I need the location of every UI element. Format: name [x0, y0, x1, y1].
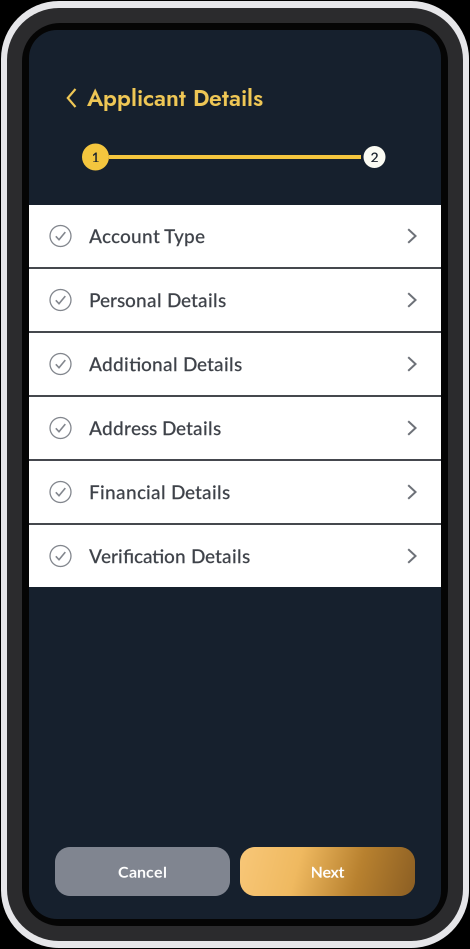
staticText: Personal Details: [89, 289, 226, 311]
button[interactable]: Back: [57, 82, 87, 114]
button[interactable]: Personal Details: [29, 269, 441, 331]
button[interactable]: Verification Details: [29, 525, 441, 587]
button[interactable]: Account Type: [29, 205, 441, 267]
button[interactable]: Financial Details: [29, 461, 441, 523]
button[interactable]: Additional Details: [29, 333, 441, 395]
staticText: Next: [310, 862, 344, 881]
button[interactable]: Next: [240, 847, 415, 896]
staticText: Address Details: [89, 417, 221, 439]
staticText: Additional Details: [89, 353, 242, 375]
staticText: Financial Details: [89, 481, 230, 503]
staticText: Cancel: [118, 862, 167, 881]
button[interactable]: Address Details: [29, 397, 441, 459]
staticText: Verification Details: [89, 545, 250, 567]
staticText: Applicant Details: [87, 81, 263, 115]
staticText: 1: [91, 149, 99, 165]
button[interactable]: Cancel: [55, 847, 230, 896]
staticText: 2: [370, 149, 378, 165]
staticText: Account Type: [89, 225, 205, 247]
